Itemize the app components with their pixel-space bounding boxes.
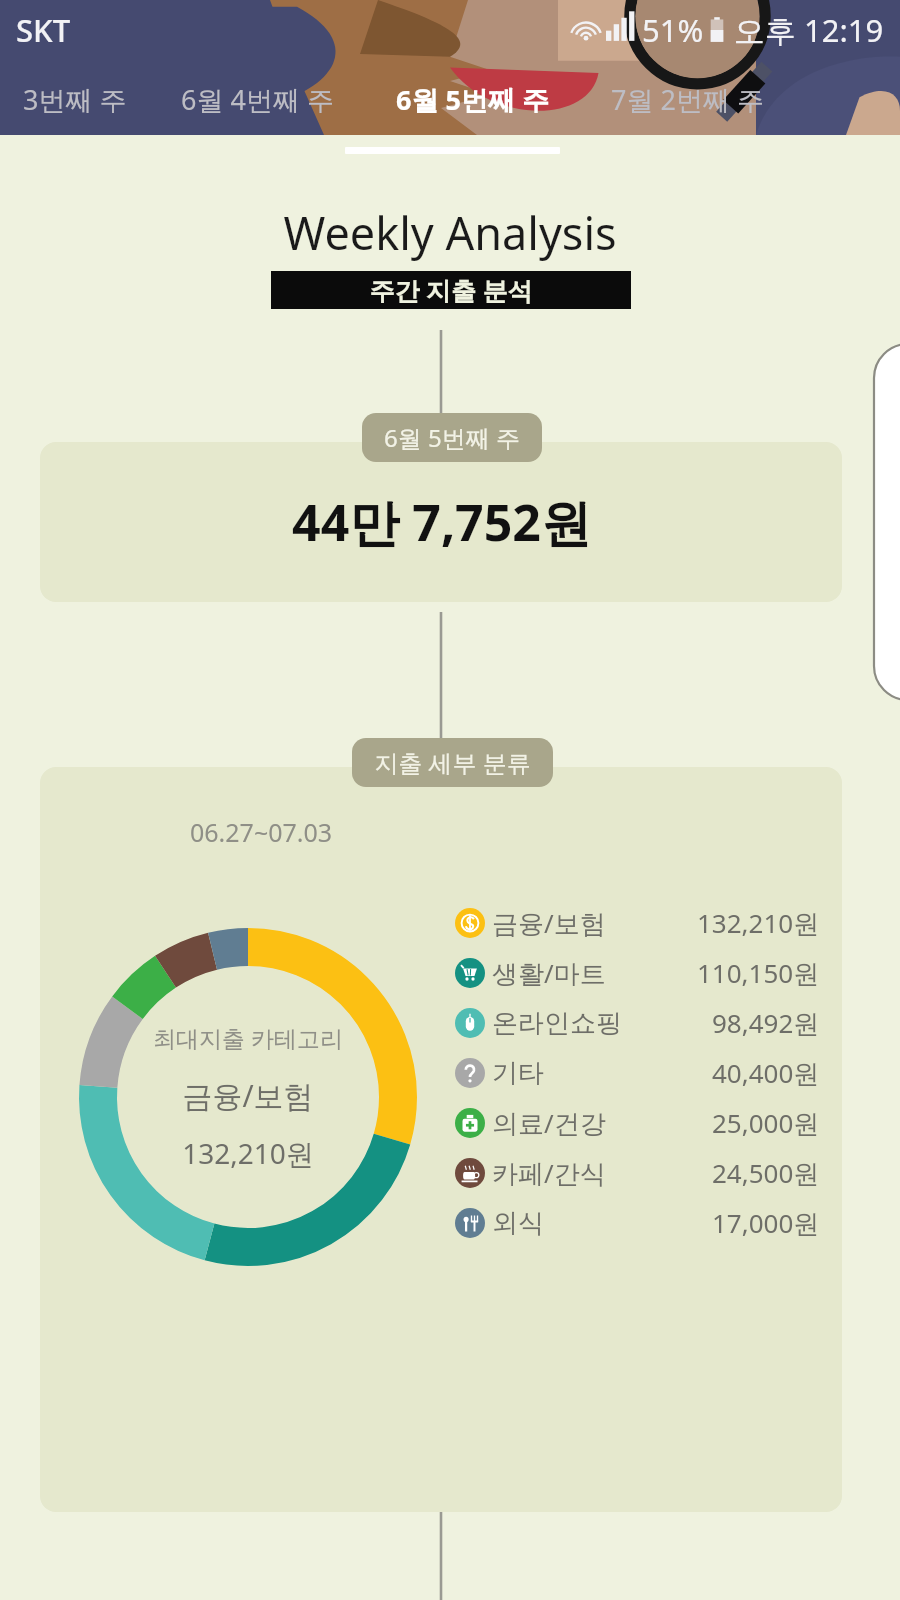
staticText: 기타 bbox=[492, 1057, 544, 1090]
staticText: SKT bbox=[16, 9, 71, 51]
other: 생활/마트 bbox=[455, 958, 485, 988]
staticText: 주간 지출 분석 bbox=[369, 273, 533, 307]
staticText: 의료/건강 bbox=[492, 1105, 606, 1141]
button[interactable]: 6월 4번째 주 bbox=[150, 63, 365, 135]
staticText: 생활/마트 bbox=[492, 955, 606, 991]
staticText: 44만 7,752원 bbox=[292, 488, 591, 556]
staticText: 지출 세부 분류 bbox=[374, 746, 531, 779]
button[interactable]: 지출 세부 분류 bbox=[352, 738, 553, 787]
button[interactable]: 44만 7,752원 bbox=[40, 442, 842, 602]
staticText: 132,210원 bbox=[697, 905, 820, 941]
staticText: Weekly Analysis bbox=[283, 202, 617, 263]
staticText: 7월 2번째 주 bbox=[611, 81, 764, 118]
staticText: 6월 5번째 주 bbox=[396, 81, 549, 118]
staticText: 51% bbox=[642, 9, 704, 51]
button[interactable]: 7월 2번째 주 bbox=[580, 63, 795, 135]
staticText: 06.27~07.03 bbox=[190, 815, 333, 849]
other: 금융/보험 bbox=[455, 908, 485, 938]
button[interactable]: 카페/간식 bbox=[455, 1155, 820, 1191]
button[interactable]: 06.27~07.03 bbox=[40, 767, 842, 1512]
staticText: 40,400원 bbox=[712, 1055, 820, 1091]
button[interactable]: 6월 5번째 주 bbox=[362, 413, 542, 462]
staticText: 외식 bbox=[492, 1207, 544, 1240]
button[interactable]: 6월 5번째 주 bbox=[365, 63, 580, 135]
staticText: 132,210원 bbox=[182, 1134, 314, 1172]
staticText: 25,000원 bbox=[712, 1105, 820, 1141]
staticText: 온라인쇼핑 bbox=[492, 1007, 622, 1040]
other: 의료/건강 bbox=[455, 1108, 485, 1138]
staticText: 98,492원 bbox=[712, 1005, 820, 1041]
staticText: 금융/보험 bbox=[182, 1075, 314, 1116]
other: 외식 bbox=[455, 1208, 485, 1238]
button[interactable]: 금융/보험 bbox=[455, 905, 820, 941]
staticText: 카페/간식 bbox=[492, 1155, 606, 1191]
other: 기타 bbox=[455, 1058, 485, 1088]
staticText: 오후 12:19 bbox=[734, 9, 884, 51]
staticText: 110,150원 bbox=[697, 955, 820, 991]
other: 온라인쇼핑 bbox=[455, 1008, 485, 1038]
staticText: 금융/보험 bbox=[492, 905, 606, 941]
button[interactable]: 의료/건강 bbox=[455, 1105, 820, 1141]
button[interactable]: 외식 bbox=[455, 1205, 820, 1241]
staticText: 17,000원 bbox=[712, 1205, 820, 1241]
button[interactable]: 기타 bbox=[455, 1055, 820, 1091]
staticText: 24,500원 bbox=[712, 1155, 820, 1191]
staticText: 3번째 주 bbox=[23, 81, 127, 118]
staticText: 6월 4번째 주 bbox=[181, 81, 334, 118]
button[interactable]: 생활/마트 bbox=[455, 955, 820, 991]
staticText: 6월 5번째 주 bbox=[384, 421, 520, 454]
other: 카페/간식 bbox=[455, 1158, 485, 1188]
staticText: 최대지출 카테고리 bbox=[153, 1022, 343, 1053]
button[interactable]: 3번째 주 bbox=[0, 63, 150, 135]
button[interactable]: 온라인쇼핑 bbox=[455, 1005, 820, 1041]
